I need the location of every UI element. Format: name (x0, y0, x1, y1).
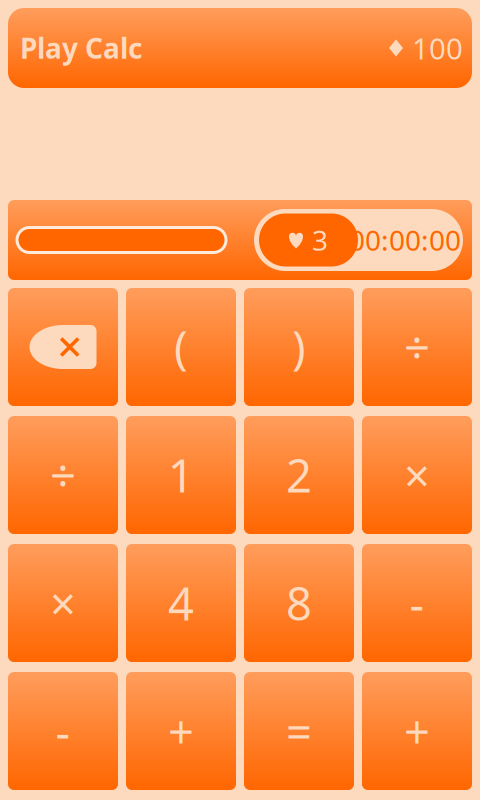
staticText: 4 (168, 573, 194, 633)
button[interactable]: Play Calc (8, 8, 472, 88)
button[interactable]: 3 (259, 213, 358, 266)
button[interactable]: + (126, 672, 236, 790)
staticText: ( (174, 317, 188, 377)
button[interactable]: - (8, 672, 118, 790)
staticText: - (55, 701, 70, 761)
button[interactable]: ÷ (362, 288, 472, 406)
button[interactable]: 2 (244, 416, 354, 534)
staticText: = (286, 701, 312, 761)
staticText: 00:00:00 (349, 221, 461, 259)
staticText: 1 (168, 445, 194, 505)
button[interactable]: 8 (244, 544, 354, 662)
button[interactable]: - (362, 544, 472, 662)
staticText: - (409, 573, 424, 633)
staticText: ÷ (404, 317, 430, 377)
staticText: Play Calc (20, 29, 142, 67)
button[interactable]: ) (244, 288, 354, 406)
staticText: × (404, 445, 430, 505)
staticText: 8 (286, 573, 312, 633)
button[interactable]: × (362, 416, 472, 534)
staticText: 3 (312, 221, 328, 259)
button[interactable]: × (8, 544, 118, 662)
staticText: × (50, 573, 76, 633)
button[interactable]: ÷ (8, 416, 118, 534)
button[interactable]: 1 (126, 416, 236, 534)
button[interactable]: ( (126, 288, 236, 406)
button[interactable]: + (362, 672, 472, 790)
button[interactable]: 4 (126, 544, 236, 662)
staticText: ÷ (50, 445, 76, 505)
staticText: 100 (412, 28, 463, 67)
button[interactable]: Delete (8, 288, 118, 406)
staticText: + (168, 701, 194, 761)
staticText: 2 (286, 445, 312, 505)
staticText: + (404, 701, 430, 761)
staticText: ) (292, 317, 306, 377)
button[interactable]: = (244, 672, 354, 790)
